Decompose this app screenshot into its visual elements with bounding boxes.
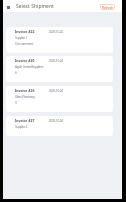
staticText: Glass Pharmacy	[15, 94, 35, 98]
button[interactable]: Refresh	[100, 4, 115, 10]
staticText: Apple Central Suppliers	[15, 64, 44, 68]
staticText: 2025-10-24	[49, 118, 63, 122]
staticText: Supplier 2	[15, 124, 28, 128]
staticText: Select Shipment	[16, 3, 54, 10]
button[interactable]: Invoice #26	[6, 86, 113, 112]
staticText: Supplier 1	[15, 35, 28, 39]
staticText: h	[15, 70, 17, 74]
staticText: Our comment	[15, 41, 33, 45]
staticText: Invoice #26	[15, 88, 35, 93]
staticText: Invoice #20	[15, 58, 35, 63]
button[interactable]: Invoice #22	[6, 27, 113, 53]
button[interactable]: Invoice #20	[6, 56, 113, 82]
staticText: 2025-10-22	[49, 29, 63, 33]
button[interactable]: Invoice #27	[6, 116, 113, 136]
staticText: 2025-10-24	[49, 88, 63, 92]
staticText: 9	[15, 100, 17, 104]
staticText: Refresh	[102, 5, 113, 9]
staticText: Invoice #27	[15, 118, 35, 123]
button[interactable]: Open navigation menu	[4, 3, 13, 12]
staticText: 2025-10-24	[49, 58, 63, 62]
staticText: Invoice #22	[15, 29, 35, 34]
